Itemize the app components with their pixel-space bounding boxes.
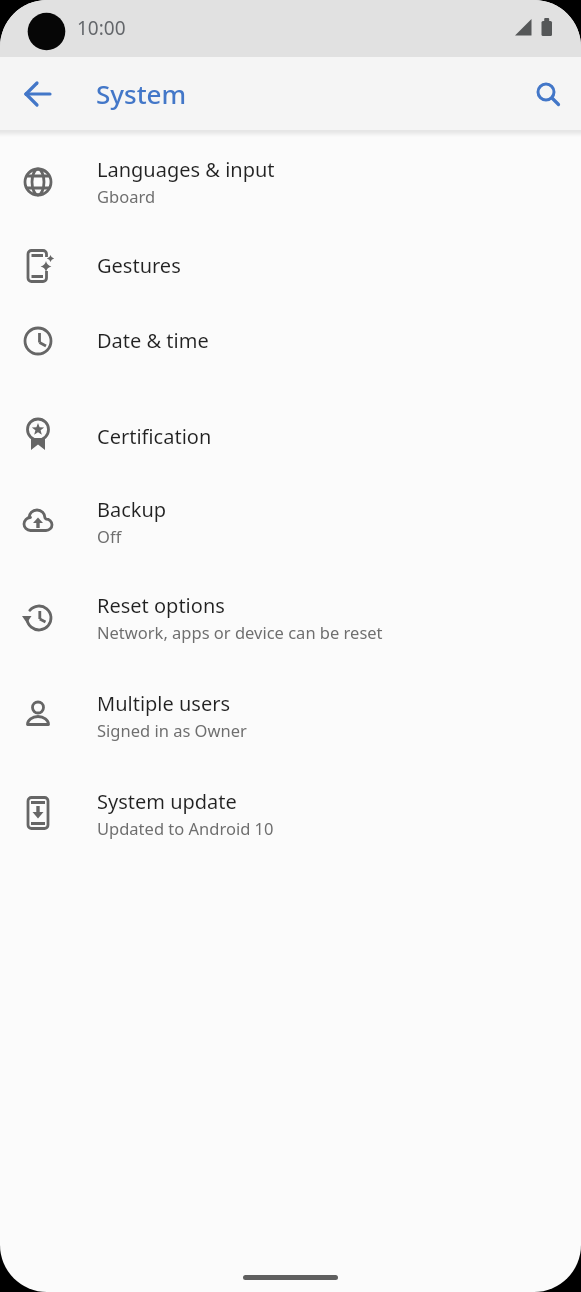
staticText: Backup <box>97 496 167 523</box>
button[interactable]: Gestures <box>0 226 581 305</box>
button[interactable]: Backup <box>0 472 581 570</box>
button[interactable]: System update <box>0 765 581 861</box>
staticText: System update <box>97 788 237 815</box>
staticText: Signed in as Owner <box>97 719 247 741</box>
button[interactable] <box>524 70 572 118</box>
staticText: 10:00 <box>77 15 126 41</box>
staticText: Off <box>97 525 122 547</box>
staticText: Gboard <box>97 185 156 207</box>
staticText: Reset options <box>97 592 225 619</box>
button[interactable] <box>14 70 62 118</box>
staticText: Network, apps or device can be reset <box>97 621 383 643</box>
button[interactable]: Languages & input <box>0 137 581 226</box>
button[interactable]: Multiple users <box>0 665 581 765</box>
button[interactable]: Reset options <box>0 570 581 665</box>
staticText: Updated to Android 10 <box>97 817 274 839</box>
staticText: Languages & input <box>97 156 275 183</box>
staticText: Multiple users <box>97 690 231 717</box>
button[interactable]: Date & time <box>0 305 581 376</box>
staticText: Certification <box>97 423 212 450</box>
staticText: Date & time <box>97 327 209 354</box>
staticText: Gestures <box>97 252 181 279</box>
button[interactable]: Certification <box>0 400 581 472</box>
staticText: System <box>96 76 187 111</box>
